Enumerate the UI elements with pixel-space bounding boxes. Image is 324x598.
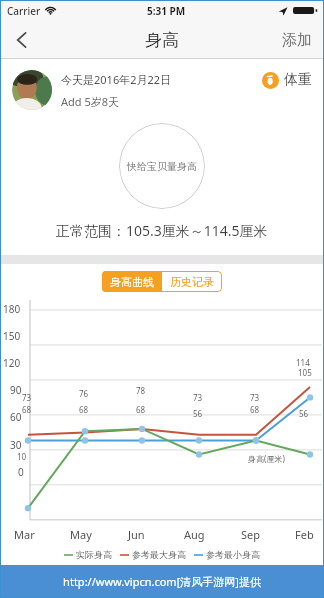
button[interactable]: 添加 xyxy=(270,21,324,59)
staticText: 180 xyxy=(3,302,21,316)
staticText: 0 xyxy=(18,465,24,479)
staticText: 添加 xyxy=(282,31,312,50)
staticText: 今天是2016年2月22日 xyxy=(61,72,172,87)
staticText: 体重 xyxy=(284,71,312,89)
staticText: 参考最小身高 xyxy=(206,549,260,560)
staticText: 150 xyxy=(3,329,21,343)
staticText: Add 5岁8天 xyxy=(61,94,120,109)
staticText: 78 xyxy=(136,385,146,396)
button[interactable]: 快给宝贝量身高 xyxy=(119,123,205,209)
staticText: 正常范围：105.3厘米～114.5厘米 xyxy=(56,221,268,240)
staticText: 身高 xyxy=(145,30,179,51)
staticText: 60 xyxy=(10,410,22,424)
staticText: 120 xyxy=(3,356,21,370)
staticText: 68 xyxy=(250,404,260,415)
staticText: 73 xyxy=(250,392,260,403)
staticText: 30 xyxy=(10,438,22,452)
button[interactable]: 身高曲线 xyxy=(102,271,162,292)
staticText: 实际身高 xyxy=(76,549,112,560)
staticText: 73 xyxy=(22,392,32,403)
staticText: 5:31 PM xyxy=(147,4,186,18)
staticText: 参考最大身高 xyxy=(132,549,186,560)
staticText: 68 xyxy=(22,404,32,415)
staticText: Aug xyxy=(184,527,205,542)
staticText: 快给宝贝量身高 xyxy=(127,160,197,173)
staticText: Jun xyxy=(128,527,145,542)
staticText: Sep xyxy=(241,527,261,542)
staticText: 身高(厘米) xyxy=(248,453,285,464)
staticText: 历史记录 xyxy=(170,275,214,289)
staticText: 90 xyxy=(10,383,22,397)
staticText: 114 xyxy=(296,357,310,368)
staticText: 56 xyxy=(299,408,309,419)
staticText: 73 xyxy=(193,392,203,403)
button[interactable]: 体重 xyxy=(262,70,312,89)
staticText: May xyxy=(70,527,92,542)
button[interactable]: Back xyxy=(0,21,44,59)
staticText: 56 xyxy=(193,408,203,419)
staticText: Mar xyxy=(14,527,35,542)
button[interactable]: 历史记录 xyxy=(162,271,222,292)
staticText: Feb xyxy=(295,527,314,542)
staticText: http://www.vipcn.com[清风手游网]提供 xyxy=(63,574,261,589)
staticText: 身高曲线 xyxy=(110,275,154,289)
staticText: Carrier xyxy=(7,4,41,18)
staticText: 105 xyxy=(298,367,312,378)
staticText: 68 xyxy=(136,404,146,415)
staticText: 10 xyxy=(17,451,27,462)
staticText: 76 xyxy=(79,388,89,399)
staticText: 68 xyxy=(79,404,89,415)
